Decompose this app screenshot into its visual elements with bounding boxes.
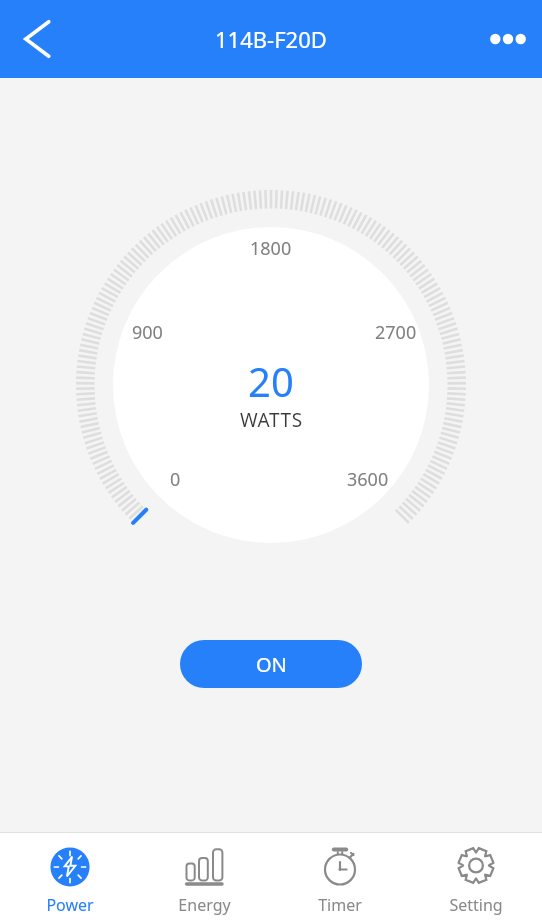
button[interactable]: Timer — [270, 833, 406, 922]
staticText: WATTS — [240, 407, 303, 433]
staticText: 3600 — [347, 467, 389, 492]
staticText: 900 — [132, 320, 163, 345]
button[interactable]: ON — [180, 640, 362, 688]
staticText: Timer — [318, 894, 362, 916]
button[interactable]: Setting — [406, 833, 542, 922]
staticText: Setting — [449, 894, 503, 916]
button[interactable]: Energy — [135, 833, 270, 922]
staticText: 1800 — [250, 236, 292, 261]
staticText: ON — [256, 651, 287, 678]
staticText: Power — [46, 894, 94, 916]
staticText: Energy — [178, 894, 231, 916]
button[interactable]: More options — [480, 11, 536, 67]
staticText: 0 — [170, 467, 181, 492]
button[interactable]: Power — [0, 833, 135, 922]
staticText: 20 — [248, 354, 294, 408]
staticText: 114B-F20D — [215, 24, 327, 54]
button[interactable]: Back — [10, 11, 66, 67]
staticText: 2700 — [375, 320, 417, 345]
